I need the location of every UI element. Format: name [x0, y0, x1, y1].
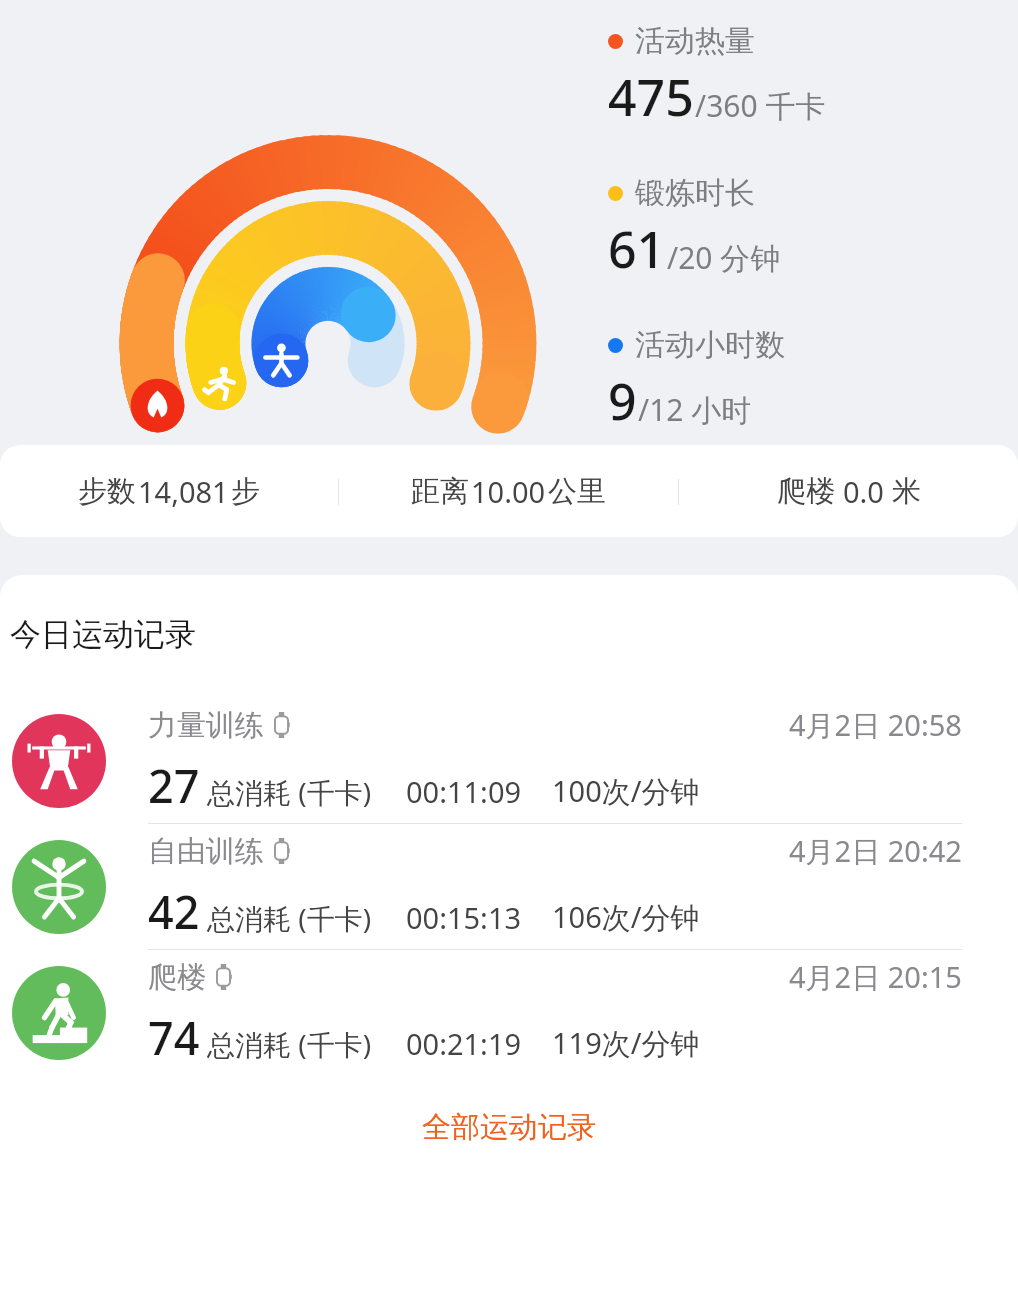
- button[interactable]: 步数: [0, 472, 338, 511]
- staticText: /360 千卡: [695, 85, 826, 126]
- staticText: 74: [148, 1007, 200, 1068]
- staticText: 公里: [548, 473, 606, 510]
- button[interactable]: 距离: [339, 472, 678, 511]
- button[interactable]: 活动热量: [608, 22, 826, 131]
- staticText: 爬楼: [148, 959, 206, 996]
- staticText: 活动热量: [635, 22, 755, 60]
- staticText: 总消耗 (千卡): [207, 899, 372, 937]
- staticText: 自由训练: [148, 833, 264, 870]
- staticText: 爬楼: [777, 473, 835, 510]
- staticText: /20 分钟: [667, 237, 781, 278]
- staticText: 14,081: [138, 472, 229, 511]
- staticText: 4月2日 20:42: [789, 831, 962, 871]
- staticText: 475: [608, 63, 694, 131]
- other: Watch source: [216, 964, 231, 990]
- other: Watch source: [274, 712, 289, 738]
- button[interactable]: 爬楼: [679, 472, 1018, 511]
- staticText: 锻炼时长: [635, 174, 755, 212]
- other: Activity rings: [118, 10, 538, 400]
- button[interactable]: 步数: [0, 445, 1018, 537]
- staticText: 活动小时数: [635, 326, 785, 364]
- staticText: 今日运动记录: [10, 615, 196, 654]
- button[interactable]: 全部运动记录: [0, 1109, 1018, 1146]
- button[interactable]: Stair climbing: [0, 950, 1018, 1075]
- staticText: 总消耗 (千卡): [207, 1025, 372, 1063]
- staticText: 距离: [411, 473, 469, 510]
- staticText: 61: [608, 215, 666, 283]
- staticText: 步数: [78, 473, 136, 510]
- staticText: 力量训练: [148, 707, 264, 744]
- staticText: 106次/分钟: [552, 897, 700, 937]
- staticText: 27: [148, 755, 200, 816]
- button[interactable]: 锻炼时长: [608, 174, 781, 283]
- staticText: 全部运动记录: [422, 1109, 596, 1146]
- staticText: 42: [148, 881, 200, 942]
- button[interactable]: Free training: [0, 824, 1018, 949]
- staticText: 00:11:09: [406, 772, 522, 811]
- other: Watch source: [274, 838, 289, 864]
- staticText: 米: [892, 473, 921, 510]
- staticText: 10.00: [471, 472, 546, 511]
- staticText: 119次/分钟: [552, 1023, 700, 1063]
- staticText: 00:15:13: [406, 898, 522, 937]
- button[interactable]: 活动小时数: [608, 326, 785, 435]
- staticText: /12 小时: [638, 389, 752, 430]
- staticText: 4月2日 20:58: [789, 705, 962, 745]
- staticText: 步: [231, 473, 260, 510]
- staticText: 4月2日 20:15: [789, 957, 962, 997]
- staticText: 00:21:19: [406, 1024, 522, 1063]
- button[interactable]: Strength training: [0, 698, 1018, 823]
- other: Strength training: [12, 714, 106, 808]
- other: Stair climbing: [12, 966, 106, 1060]
- other: Free training: [12, 840, 106, 934]
- staticText: 0.0: [843, 472, 884, 511]
- staticText: 100次/分钟: [552, 771, 700, 811]
- staticText: 总消耗 (千卡): [207, 773, 372, 811]
- staticText: 9: [608, 367, 637, 435]
